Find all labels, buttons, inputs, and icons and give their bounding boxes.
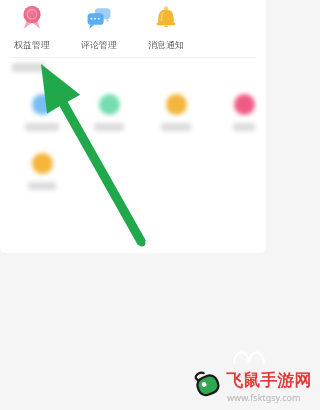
button[interactable] bbox=[20, 153, 64, 190]
other: 权益管理 bbox=[19, 4, 45, 30]
button[interactable]: 权益管理 bbox=[6, 2, 58, 50]
button[interactable] bbox=[154, 94, 198, 131]
other: 评论管理 bbox=[86, 4, 112, 30]
staticText: 评论管理 bbox=[81, 39, 117, 50]
staticText: 权益管理 bbox=[14, 39, 50, 50]
button[interactable]: 评论管理 bbox=[73, 2, 125, 50]
button[interactable] bbox=[20, 94, 64, 131]
button[interactable] bbox=[222, 94, 266, 131]
other: 消息通知 bbox=[153, 4, 179, 30]
button[interactable]: 消息通知 bbox=[140, 2, 192, 50]
button[interactable] bbox=[87, 94, 131, 131]
other: 飞鼠手游网 logo bbox=[192, 368, 224, 400]
staticText: 飞鼠手游网 bbox=[226, 370, 311, 391]
staticText: 消息通知 bbox=[148, 39, 184, 50]
staticText: www.fsktgsy.com bbox=[227, 391, 301, 403]
